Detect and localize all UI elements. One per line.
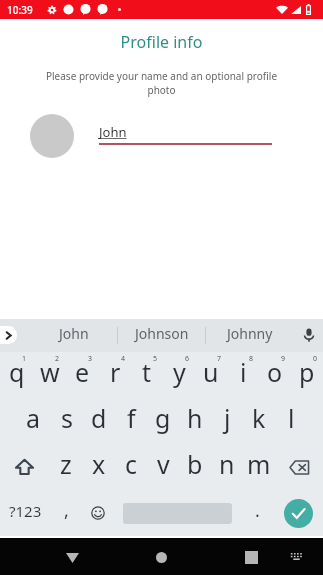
button[interactable]: u xyxy=(195,352,227,398)
staticText: q xyxy=(9,355,25,389)
staticText: 0 xyxy=(313,354,318,364)
staticText: b xyxy=(187,447,203,481)
staticText: 1 xyxy=(22,354,27,364)
staticText: 9 xyxy=(281,354,286,364)
staticText: p xyxy=(299,355,315,389)
staticText: y xyxy=(173,355,186,389)
staticText: n xyxy=(219,447,235,481)
button[interactable]: n xyxy=(211,444,243,490)
button[interactable]: l xyxy=(275,398,307,444)
staticText: 7 xyxy=(217,354,222,364)
button[interactable]: z xyxy=(49,444,82,490)
button[interactable]: c xyxy=(115,444,147,490)
button[interactable]: Space xyxy=(113,490,241,536)
button[interactable]: b xyxy=(179,444,211,490)
staticText: z xyxy=(60,447,72,481)
button[interactable]: a xyxy=(17,398,50,444)
button[interactable]: Enter xyxy=(273,490,323,536)
button[interactable]: Expand suggestions xyxy=(0,326,17,344)
button[interactable]: Backspace xyxy=(275,444,323,490)
staticText: 3 xyxy=(88,354,93,364)
staticText: w xyxy=(40,355,60,389)
button[interactable]: p xyxy=(291,352,323,398)
staticText: . xyxy=(255,498,260,523)
staticText: 6 xyxy=(185,354,190,364)
button[interactable]: d xyxy=(83,398,115,444)
staticText: i xyxy=(240,355,247,389)
button[interactable]: Emoji xyxy=(82,490,113,536)
staticText: d xyxy=(91,401,107,435)
button[interactable]: Switch keyboard xyxy=(278,538,314,575)
button[interactable]: f xyxy=(115,398,147,444)
button[interactable]: e xyxy=(66,352,99,398)
button[interactable]: Shift xyxy=(0,444,49,490)
button[interactable]: ?123 xyxy=(0,490,50,536)
button[interactable]: q xyxy=(0,352,33,398)
staticText: j xyxy=(224,401,231,435)
button[interactable]: k xyxy=(243,398,275,444)
staticText: g xyxy=(155,401,171,435)
staticText: 8 xyxy=(249,354,254,364)
button[interactable]: Voice input xyxy=(295,322,323,350)
staticText: l xyxy=(288,401,295,435)
button[interactable]: g xyxy=(147,398,179,444)
staticText: v xyxy=(157,447,170,481)
staticText: c xyxy=(125,447,138,481)
button[interactable]: i xyxy=(227,352,259,398)
staticText: ?123 xyxy=(9,501,42,521)
button[interactable]: h xyxy=(179,398,211,444)
button[interactable]: j xyxy=(211,398,243,444)
button[interactable]: s xyxy=(50,398,83,444)
staticText: Please provide your name and an optional… xyxy=(36,69,287,97)
staticText: k xyxy=(252,401,266,435)
button[interactable]: , xyxy=(50,490,82,536)
button[interactable]: Johnson xyxy=(118,319,205,352)
button[interactable]: m xyxy=(243,444,275,490)
staticText: John xyxy=(99,123,127,141)
button[interactable]: Recent apps xyxy=(229,538,273,575)
staticText: m xyxy=(247,447,271,481)
button[interactable]: v xyxy=(147,444,179,490)
staticText: 4 xyxy=(121,354,126,364)
staticText: Johnson xyxy=(135,324,189,343)
button[interactable]: Johnny xyxy=(206,319,293,352)
button[interactable]: John xyxy=(30,319,117,352)
staticText: , xyxy=(64,498,69,523)
staticText: x xyxy=(92,447,106,481)
staticText: h xyxy=(187,401,203,435)
button[interactable]: y xyxy=(163,352,195,398)
button[interactable]: Back xyxy=(50,538,94,575)
staticText: u xyxy=(203,355,219,389)
staticText: 10:39 xyxy=(7,3,33,17)
button[interactable]: t xyxy=(131,352,163,398)
staticText: r xyxy=(110,355,121,389)
button[interactable]: Home xyxy=(139,538,183,575)
staticText: a xyxy=(26,401,41,435)
staticText: 5 xyxy=(153,354,158,364)
button[interactable]: w xyxy=(33,352,66,398)
button[interactable]: Add profile photo xyxy=(30,114,74,158)
staticText: t xyxy=(142,355,152,389)
staticText: o xyxy=(267,355,283,389)
staticText: s xyxy=(61,401,73,435)
staticText: John xyxy=(59,324,89,343)
staticText: e xyxy=(75,355,90,389)
staticText: Johnny xyxy=(227,324,273,343)
button[interactable]: r xyxy=(99,352,131,398)
staticText: f xyxy=(127,401,136,435)
staticText: Profile info xyxy=(0,31,323,53)
staticText: 2 xyxy=(55,354,60,364)
button[interactable]: o xyxy=(259,352,291,398)
button[interactable]: x xyxy=(82,444,115,490)
button[interactable]: . xyxy=(241,490,273,536)
